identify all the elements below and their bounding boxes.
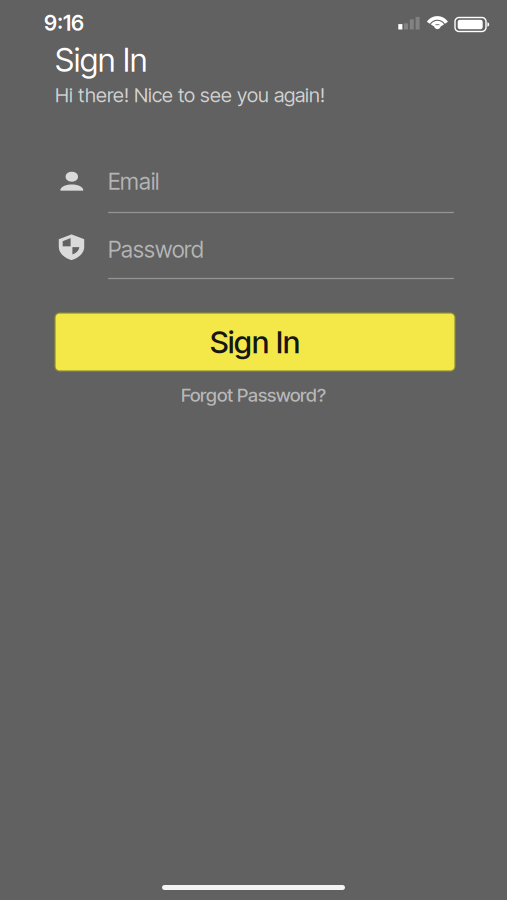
- staticText: Sign In: [210, 323, 300, 360]
- button[interactable]: Password: [54, 233, 454, 280]
- staticText: Password: [108, 236, 204, 263]
- staticText: Email: [108, 168, 159, 195]
- staticText: Sign In: [55, 41, 147, 79]
- button[interactable]: Forgot Password?: [0, 385, 507, 405]
- staticText: Forgot Password?: [181, 384, 326, 406]
- staticText: 9:16: [44, 10, 84, 36]
- button[interactable]: Sign In: [55, 313, 455, 371]
- staticText: Hi there! Nice to see you again!: [55, 83, 325, 107]
- button[interactable]: Email: [54, 167, 454, 214]
